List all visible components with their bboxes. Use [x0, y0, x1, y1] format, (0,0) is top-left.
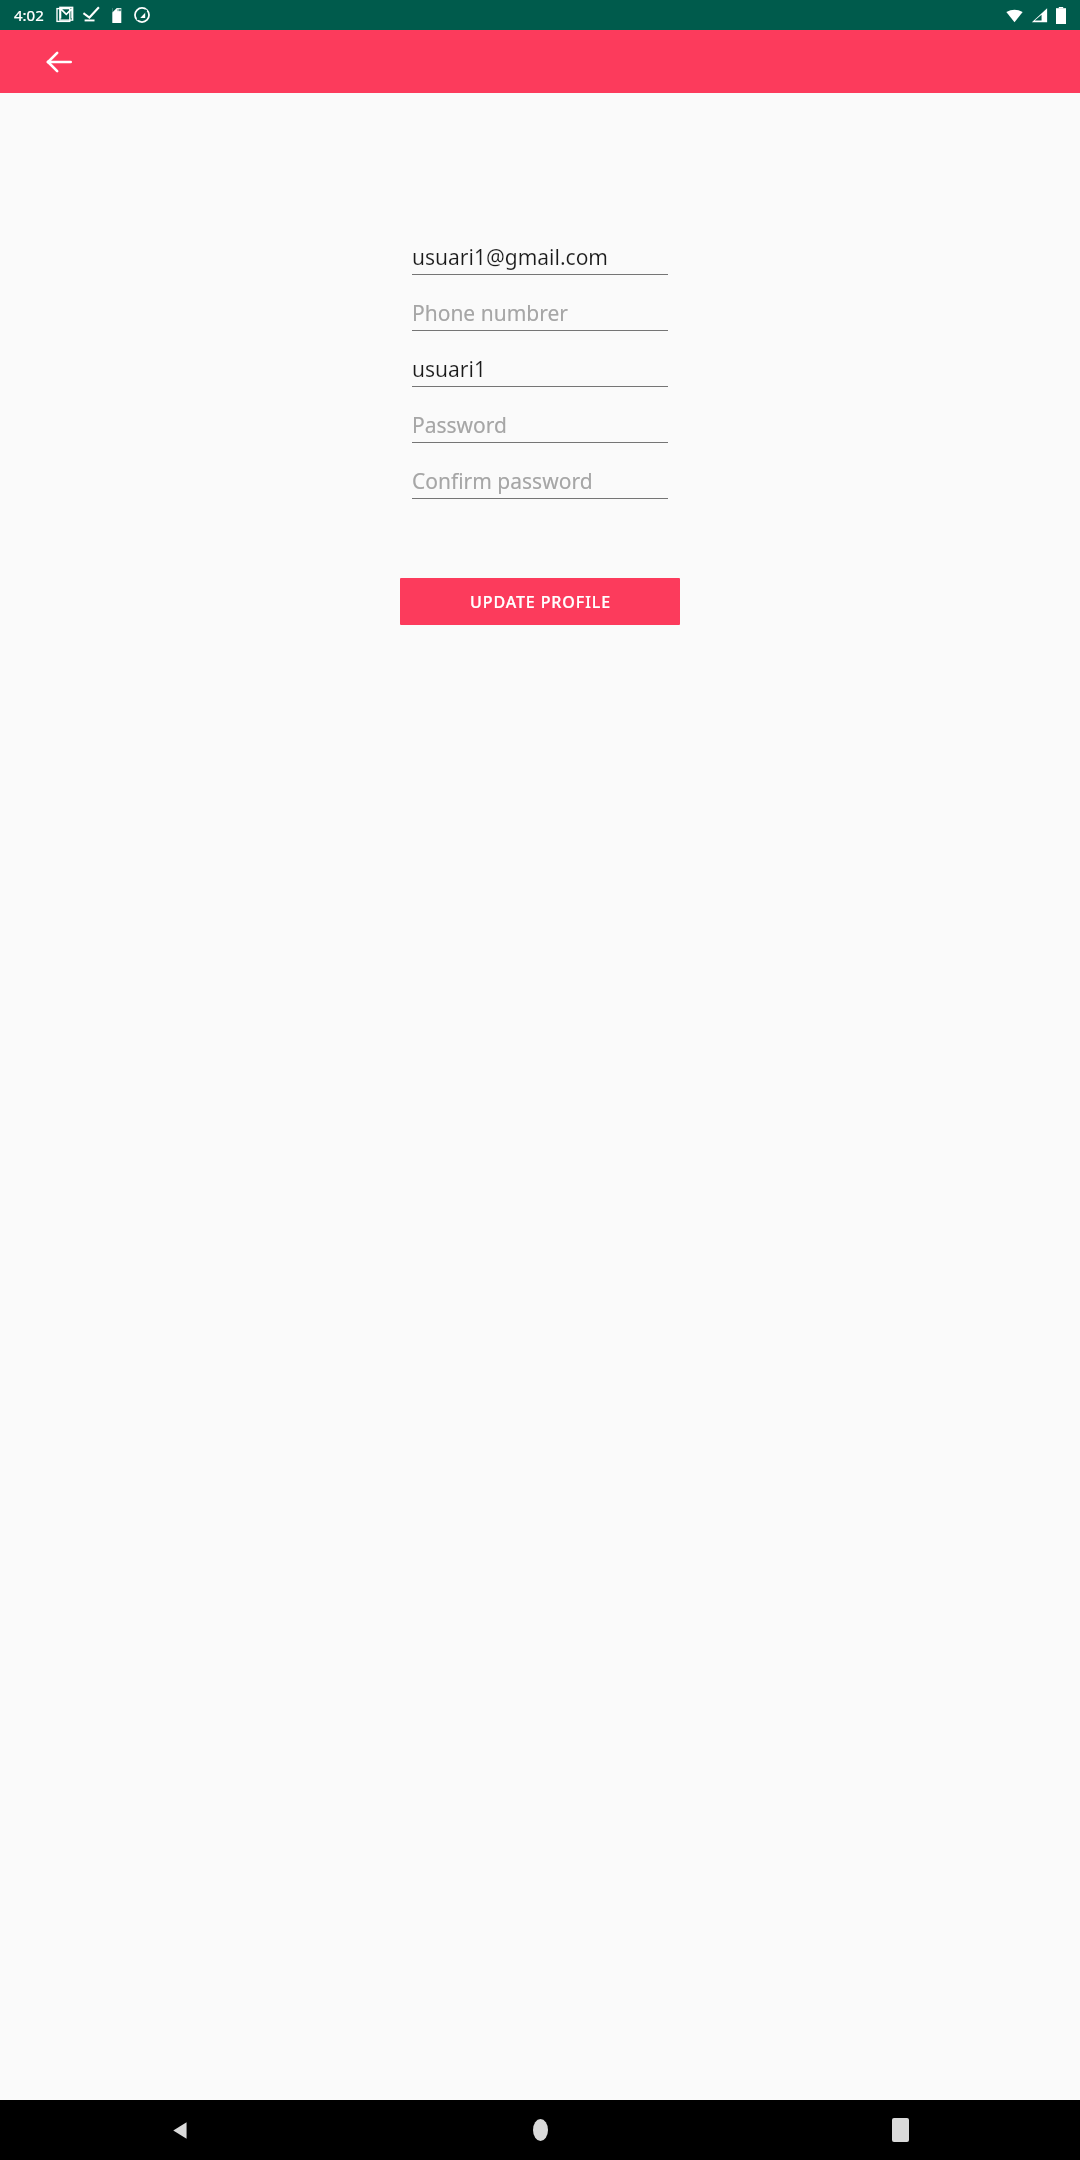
- button[interactable]: UPDATE PROFILE: [400, 578, 680, 625]
- button[interactable]: Phone numbrer: [412, 297, 668, 331]
- button[interactable]: Recent apps: [720, 2100, 1080, 2160]
- staticText: Phone numbrer: [412, 299, 568, 328]
- button[interactable]: Confirm password: [412, 465, 668, 499]
- staticText: 4:02: [14, 5, 44, 25]
- staticText: usuari1@gmail.com: [412, 243, 608, 272]
- button[interactable]: usuari1@gmail.com: [412, 241, 668, 275]
- button[interactable]: Back: [0, 2100, 360, 2160]
- staticText: Password: [412, 411, 507, 440]
- button[interactable]: Back: [44, 47, 74, 77]
- staticText: usuari1: [412, 355, 486, 384]
- staticText: Confirm password: [412, 467, 593, 496]
- staticText: UPDATE PROFILE: [470, 591, 611, 613]
- button[interactable]: usuari1: [412, 353, 668, 387]
- button[interactable]: Home: [360, 2100, 720, 2160]
- button[interactable]: Password: [412, 409, 668, 443]
